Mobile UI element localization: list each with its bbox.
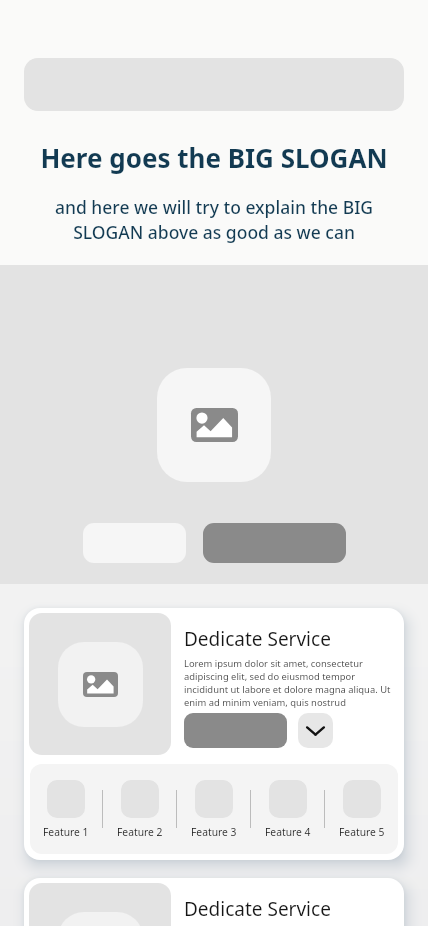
staticText: Dedicate Service — [184, 626, 331, 652]
staticText: Dedicate Service — [184, 896, 331, 922]
staticText: Feature 1 — [43, 825, 89, 839]
button[interactable]: Feature 3 — [177, 780, 250, 839]
button[interactable]: Dedicate Service — [24, 878, 404, 926]
staticText: Here goes the BIG SLOGAN — [0, 140, 428, 175]
staticText: Feature 5 — [339, 825, 385, 839]
staticText: and here we will try to explain the BIG … — [44, 195, 384, 244]
staticText: Feature 3 — [191, 825, 237, 839]
button[interactable] — [184, 713, 287, 748]
button[interactable]: Feature 4 — [251, 780, 324, 839]
button[interactable]: Dedicate Service — [24, 608, 404, 860]
button[interactable]: Expand details — [298, 713, 333, 748]
button[interactable]: Feature 5 — [325, 780, 398, 839]
button[interactable]: Feature 2 — [103, 780, 176, 839]
button[interactable] — [203, 523, 346, 563]
button[interactable]: Feature 1 — [30, 780, 102, 839]
staticText: Feature 2 — [117, 825, 163, 839]
staticText: Lorem ipsum dolor sit amet, consectetur … — [184, 657, 392, 709]
staticText: Feature 4 — [265, 825, 311, 839]
